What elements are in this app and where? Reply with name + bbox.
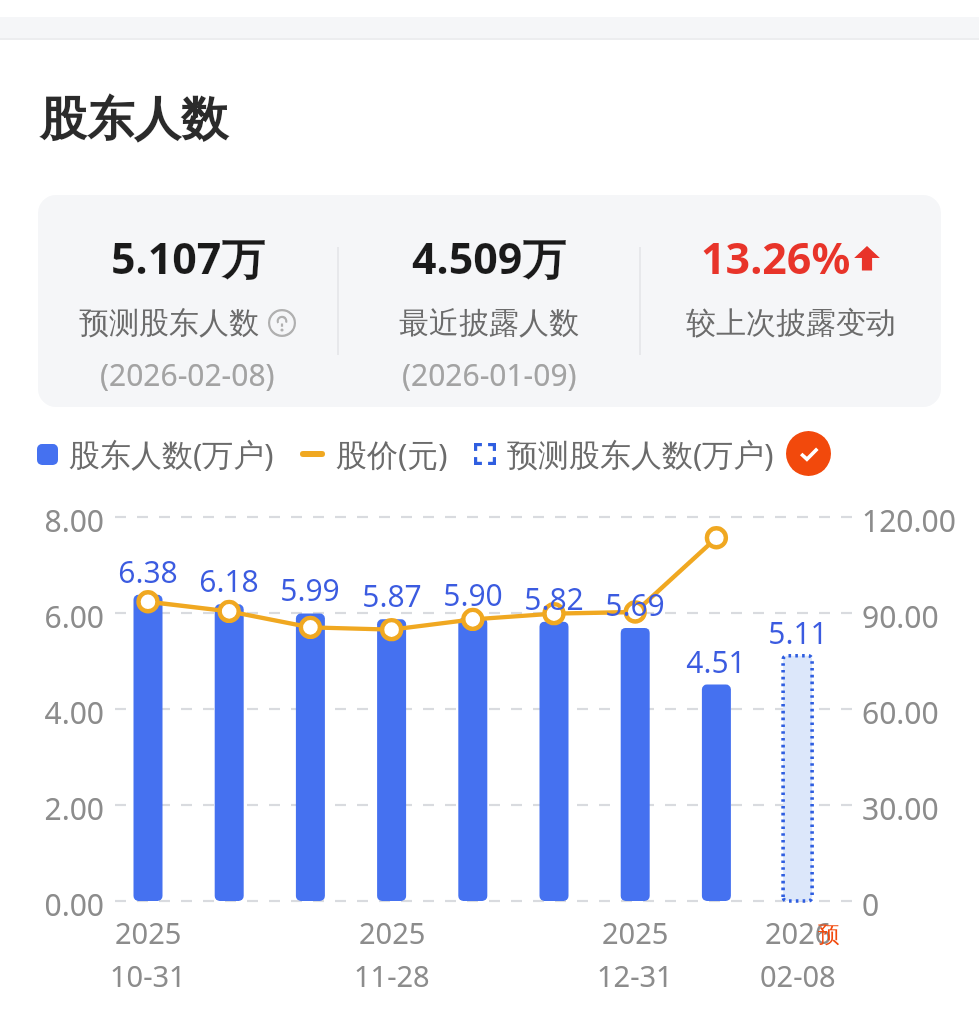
staticText: 0 [862, 884, 880, 925]
staticText: 预 [818, 921, 840, 949]
staticText: 8.00 [12, 500, 104, 541]
staticText: 预测股东人数 [79, 304, 259, 342]
button[interactable]: Confirm selection [786, 431, 831, 476]
staticText: 2025 [602, 913, 669, 952]
staticText: 13.26% [701, 228, 851, 287]
staticText: 4.00 [12, 692, 104, 733]
staticText: 最近披露人数 [399, 304, 579, 342]
staticText: 12-31 [597, 956, 673, 995]
staticText: 30.00 [862, 788, 939, 829]
staticText: 4.51 [671, 641, 761, 682]
staticText: 11-28 [354, 956, 430, 995]
staticText: 2025 [359, 913, 426, 952]
staticText: 5.11 [753, 612, 843, 653]
staticText: (2026-01-09) [402, 354, 577, 395]
staticText: 股东人数 [40, 90, 228, 149]
staticText: 5.69 [590, 584, 680, 625]
button[interactable]: 股价(元) [300, 433, 448, 475]
button[interactable]: 股东人数(万户) [37, 433, 274, 475]
staticText: 4.509万 [412, 228, 566, 287]
staticText: 6.00 [12, 596, 104, 637]
staticText: 0.00 [12, 884, 104, 925]
staticText: 5.82 [509, 578, 599, 619]
staticText: 6.18 [184, 560, 274, 601]
staticText: 较上次披露变动 [686, 304, 896, 342]
staticText: 60.00 [862, 692, 939, 733]
button[interactable]: 预测股东人数(万户) [474, 433, 774, 475]
staticText: 6.38 [103, 551, 193, 592]
staticText: 02-08 [760, 956, 836, 995]
staticText: 10-31 [110, 956, 186, 995]
staticText: 股价(元) [336, 433, 448, 475]
staticText: 90.00 [862, 596, 939, 637]
staticText: 2.00 [12, 788, 104, 829]
staticText: 5.107万 [111, 228, 265, 287]
staticText: 预测股东人数(万户) [507, 433, 774, 475]
staticText: (2026-02-08) [100, 354, 275, 395]
staticText: 5.90 [428, 574, 518, 615]
staticText: 2026 [765, 913, 832, 952]
staticText: 5.87 [347, 575, 437, 616]
staticText: 120.00 [862, 500, 956, 541]
staticText: 2025 [115, 913, 182, 952]
staticText: 股东人数(万户) [69, 433, 274, 475]
button[interactable]: 5.107万 [38, 195, 941, 407]
staticText: 5.99 [265, 569, 355, 610]
